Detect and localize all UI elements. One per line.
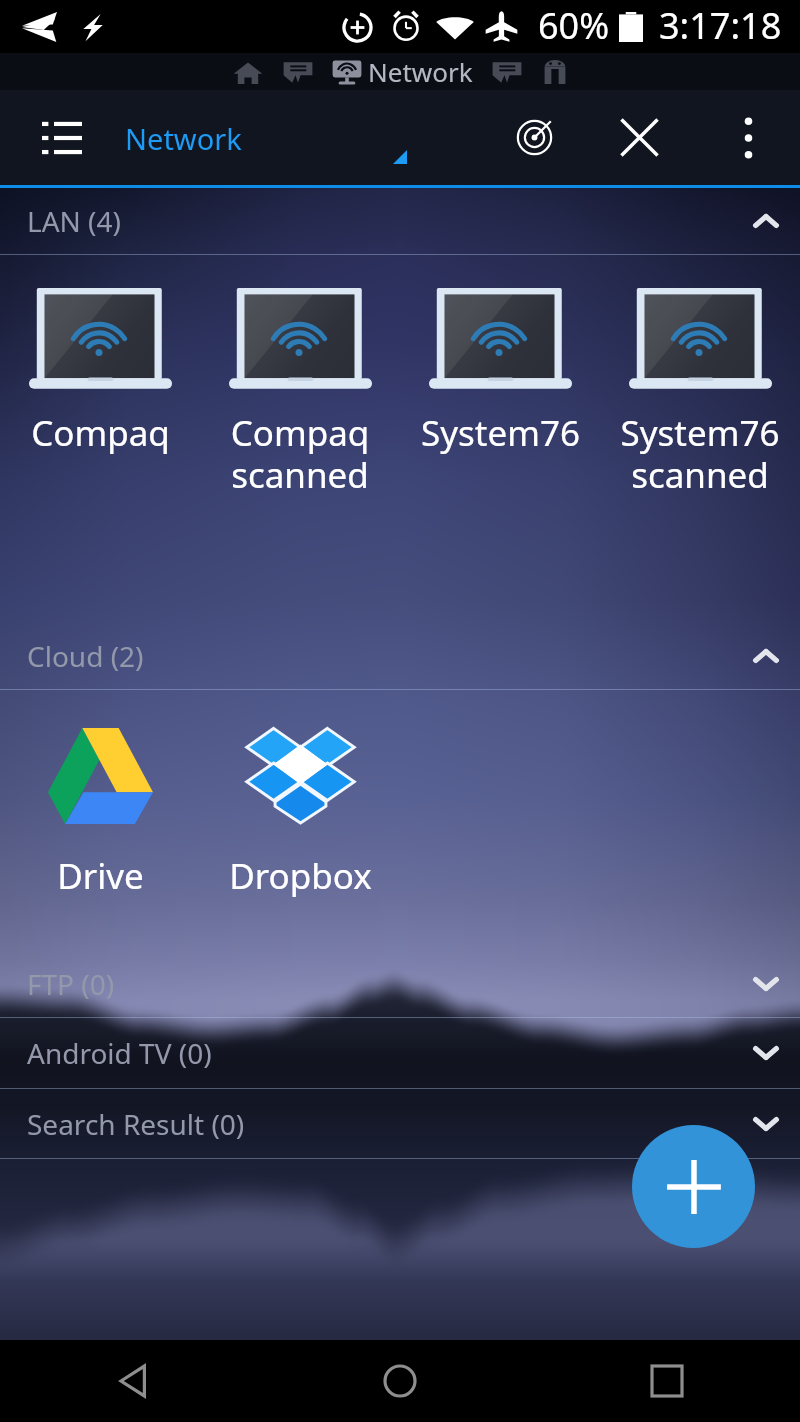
button[interactable]: Dropbox bbox=[200, 690, 400, 951]
staticText: Drive bbox=[57, 852, 144, 900]
button[interactable]: System76 scanned bbox=[600, 255, 800, 623]
button[interactable]: Cloud (2) bbox=[0, 623, 800, 690]
button[interactable]: Home bbox=[365, 1346, 435, 1416]
button[interactable]: Recents bbox=[632, 1346, 702, 1416]
button[interactable]: Scan bbox=[486, 90, 582, 185]
button[interactable]: Close bbox=[591, 90, 687, 185]
staticText: Compaq scanned bbox=[200, 409, 400, 498]
staticText: System76 bbox=[421, 409, 580, 457]
staticText: Cloud (2) bbox=[27, 637, 144, 675]
button[interactable]: SD card 2 bbox=[491, 58, 523, 86]
staticText: FTP (0) bbox=[27, 965, 115, 1003]
button[interactable]: LAN (4) bbox=[0, 188, 800, 255]
staticText: Search Result (0) bbox=[27, 1105, 245, 1143]
staticText: Compaq bbox=[31, 409, 170, 457]
button[interactable]: Network bbox=[332, 54, 473, 89]
button[interactable]: Compaq scanned bbox=[200, 255, 400, 623]
button[interactable]: SD card bbox=[282, 58, 314, 86]
staticText: Network bbox=[125, 119, 242, 158]
staticText: Network bbox=[368, 54, 473, 89]
staticText: LAN (4) bbox=[27, 202, 121, 240]
button[interactable]: Apps bbox=[542, 57, 568, 87]
button[interactable]: More options bbox=[700, 90, 796, 185]
button[interactable]: Drive bbox=[0, 690, 200, 951]
staticText: 3:17:18 bbox=[659, 1, 782, 50]
button[interactable]: Back bbox=[98, 1346, 168, 1416]
button[interactable]: Android TV (0) bbox=[0, 1018, 800, 1089]
button[interactable]: System76 bbox=[400, 255, 600, 623]
button[interactable]: Add bbox=[632, 1125, 755, 1248]
button[interactable]: Home bbox=[233, 57, 263, 87]
staticText: Android TV (0) bbox=[27, 1034, 212, 1072]
button[interactable]: FTP (0) bbox=[0, 951, 800, 1018]
button[interactable]: Compaq bbox=[0, 255, 200, 623]
staticText: System76 scanned bbox=[600, 409, 800, 498]
staticText: Dropbox bbox=[229, 852, 372, 900]
staticText: 60% bbox=[538, 1, 610, 50]
button[interactable]: Search Result (0) bbox=[0, 1089, 800, 1159]
button[interactable]: Menu bbox=[18, 90, 106, 185]
